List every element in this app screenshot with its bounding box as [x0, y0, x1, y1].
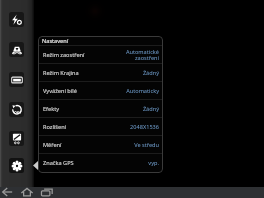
staticText: Měření [43, 141, 62, 149]
staticText: Nastavení [42, 37, 69, 45]
staticText: Efekty [43, 105, 60, 113]
staticText: Žádný [142, 69, 159, 77]
button[interactable]: Self timer [9, 102, 24, 117]
staticText: Režim Krajina [43, 69, 79, 77]
button[interactable]: Settings [9, 158, 24, 173]
button[interactable]: Picture size [9, 72, 24, 87]
staticText: Vyvážení bílé [43, 87, 77, 95]
button[interactable]: Back [1, 186, 13, 198]
button[interactable]: Recent apps [41, 186, 53, 198]
button[interactable]: Režim zaostření [39, 46, 162, 64]
staticText: Žádný [142, 105, 159, 113]
button[interactable]: Exposure value [9, 131, 24, 146]
staticText: Režim zaostření [43, 51, 85, 59]
button[interactable]: Vyvážení bílé [39, 82, 162, 100]
staticText: Automaticky [126, 87, 159, 95]
staticText: Značka GPS [43, 159, 74, 167]
button[interactable]: Režim Krajina [39, 64, 162, 82]
button[interactable]: Značka GPS [39, 154, 162, 172]
button[interactable]: Měření [39, 136, 162, 154]
staticText: Automatické zaostření [125, 48, 159, 62]
staticText: vyp. [148, 159, 159, 167]
staticText: 2048X1536 [130, 123, 159, 131]
staticText: Ve středu [134, 141, 159, 149]
button[interactable]: Scene mode [9, 42, 24, 57]
button[interactable]: Efekty [39, 100, 162, 118]
button[interactable]: Home [21, 186, 33, 198]
button[interactable]: Flash mode [9, 12, 24, 27]
button[interactable]: Rozlišení [39, 118, 162, 136]
staticText: Rozlišení [43, 123, 67, 131]
